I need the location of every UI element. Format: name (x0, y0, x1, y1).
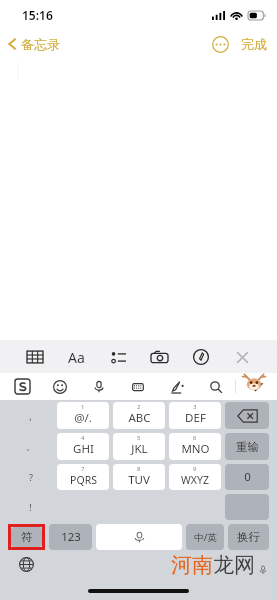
staticText: DEF (185, 410, 206, 426)
staticText: 0 (244, 469, 251, 485)
staticText: 1 (81, 403, 85, 411)
staticText: 8 (137, 465, 141, 473)
button[interactable]: Markup (186, 344, 216, 370)
staticText: Aa (68, 348, 85, 367)
staticText: 完成 (241, 36, 267, 52)
button[interactable]: Hide keyboard (236, 373, 275, 400)
button[interactable]: 2 (113, 402, 165, 429)
button[interactable]: Checklist (103, 344, 133, 370)
button[interactable]: 换行 (228, 524, 269, 550)
staticText: PQRS (70, 473, 97, 487)
staticText: 重输 (236, 440, 259, 454)
button[interactable]: , (8, 402, 53, 429)
button[interactable]: 1 (57, 402, 109, 429)
button[interactable]: More options (212, 36, 229, 53)
button[interactable]: 完成 (239, 33, 269, 55)
staticText: ? (29, 471, 33, 483)
staticText: 。 (26, 441, 35, 452)
button[interactable] (225, 494, 269, 520)
staticText: 符 (21, 530, 33, 544)
staticText: , (29, 410, 32, 422)
button[interactable]: 中/英 (186, 524, 224, 550)
button[interactable]: Keyboard (118, 373, 157, 400)
button[interactable]: 3 (169, 402, 221, 429)
staticText: 换行 (237, 530, 260, 544)
staticText: TUV (128, 472, 150, 488)
button[interactable]: 5 (113, 433, 165, 460)
staticText: 7 (81, 465, 85, 473)
button[interactable]: Aa (61, 344, 91, 370)
button[interactable]: 7 (57, 464, 109, 490)
button[interactable]: 4 (57, 433, 109, 460)
staticText: 3 (193, 403, 197, 411)
staticText: MNO (181, 441, 210, 457)
staticText: 6 (193, 434, 197, 442)
button[interactable]: Handwriting (157, 373, 196, 400)
button[interactable]: 123 (49, 524, 92, 550)
staticText: 15:16 (22, 7, 53, 23)
button[interactable]: Search (196, 373, 235, 400)
staticText: JKL (131, 441, 148, 457)
staticText: 河南 (171, 552, 213, 578)
button[interactable]: 重输 (225, 433, 269, 460)
button[interactable]: Emoji (41, 373, 79, 400)
staticText: 123 (61, 529, 81, 545)
button[interactable]: Change keyboard (16, 554, 36, 574)
button[interactable]: Voice input (79, 373, 118, 400)
staticText: 2 (137, 403, 141, 411)
button[interactable]: 9 (169, 464, 221, 490)
staticText: 4 (81, 434, 85, 442)
button[interactable]: Space, voice input (96, 524, 182, 550)
staticText: 龙网 (213, 552, 255, 578)
button[interactable]: 6 (169, 433, 221, 460)
button[interactable]: ! (8, 494, 53, 520)
staticText: 5 (137, 434, 141, 442)
button[interactable]: 备忘录 (5, 33, 63, 55)
staticText: 中/英 (194, 531, 217, 544)
staticText: 9 (193, 465, 197, 473)
button[interactable]: 符 (11, 527, 42, 547)
staticText: ABC (128, 410, 151, 426)
button[interactable]: 8 (113, 464, 165, 490)
staticText: GHI (73, 441, 94, 457)
button[interactable]: ? (8, 464, 53, 490)
button[interactable]: Sogou menu (3, 373, 41, 400)
button[interactable]: Camera (144, 344, 174, 370)
staticText: WXYZ (181, 473, 209, 487)
staticText: @/. (74, 410, 92, 426)
staticText: ! (29, 501, 32, 513)
button[interactable]: Insert table (20, 344, 50, 370)
button[interactable]: Close toolbar (227, 344, 257, 370)
button[interactable]: 0 (225, 464, 269, 490)
staticText: 备忘录 (21, 36, 60, 52)
button[interactable]: Delete (225, 402, 269, 429)
